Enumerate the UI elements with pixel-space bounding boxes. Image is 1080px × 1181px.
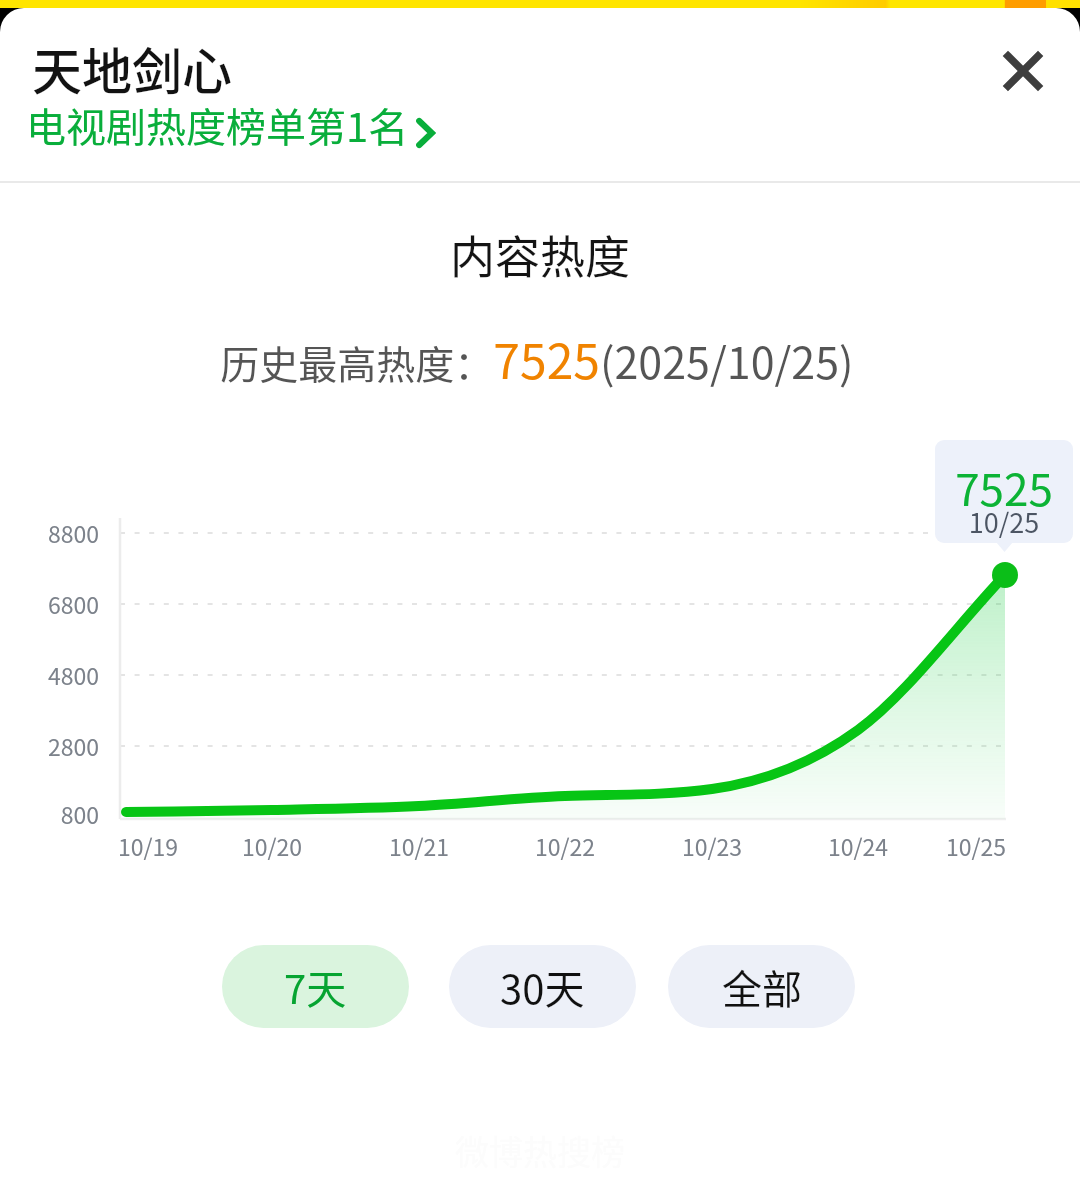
staticText: 10/23 [652,829,772,862]
staticText: 7525 [935,455,1073,519]
staticText: 8800 [0,516,99,549]
staticText: 6800 [0,587,99,620]
staticText: 天地剑心 [32,32,232,104]
button[interactable]: 电视剧热度榜单第1名 [26,96,435,154]
button[interactable]: 全部 [668,945,855,1028]
staticText: 10/25 [935,502,1073,541]
staticText: 内容热度 [0,222,1080,287]
staticText: 10/25 [916,829,1036,862]
staticText: 30天 [500,958,585,1016]
staticText: 10/22 [505,829,625,862]
staticText: 10/24 [798,829,918,862]
staticText: 10/20 [212,829,332,862]
button[interactable]: Close [979,27,1067,115]
button[interactable]: 7天 [222,945,409,1028]
staticText: 7天 [284,958,347,1016]
staticText: 历史最高热度：7525(2025/10/25) [0,323,1077,393]
staticText: 电视剧热度榜单第1名 [26,96,409,154]
staticText: 4800 [0,658,99,691]
staticText: 10/21 [359,829,479,862]
button[interactable]: 30天 [449,945,636,1028]
staticText: 800 [0,797,99,830]
staticText: 2800 [0,729,99,762]
staticText: 10/19 [88,829,208,862]
staticText: 全部 [722,958,802,1016]
